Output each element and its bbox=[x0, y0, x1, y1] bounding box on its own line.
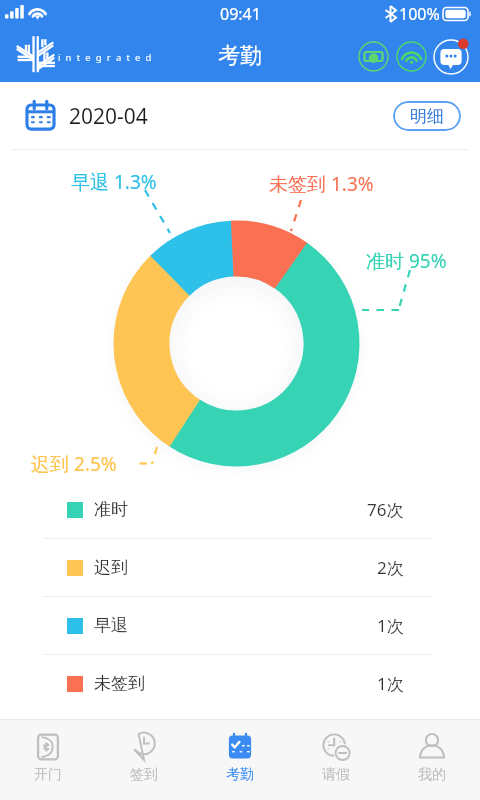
staticText: 准时 95% bbox=[366, 248, 447, 274]
staticText: 准时 bbox=[94, 499, 128, 520]
button[interactable]: 签到 bbox=[96, 720, 192, 800]
button[interactable]: 开门 bbox=[0, 720, 96, 800]
staticText: 早退 1.3% bbox=[71, 169, 157, 195]
staticText: i n t e g r a t e d bbox=[58, 51, 153, 64]
staticText: 未签到 bbox=[94, 673, 145, 694]
button[interactable]: Messages bbox=[430, 34, 474, 78]
button[interactable]: Device status bbox=[354, 37, 392, 75]
button[interactable]: 考勤 bbox=[192, 720, 288, 800]
staticText: 迟到 2.5% bbox=[31, 451, 117, 477]
staticText: 请假 bbox=[322, 766, 350, 784]
staticText: 2次 bbox=[377, 556, 404, 579]
staticText: 09:41 bbox=[220, 3, 261, 25]
staticText: 我的 bbox=[418, 766, 446, 784]
staticText: 100% bbox=[399, 3, 440, 25]
button[interactable]: 早退 bbox=[0, 597, 480, 654]
button[interactable]: 未签到 bbox=[0, 655, 480, 712]
staticText: 开门 bbox=[34, 766, 62, 784]
staticText: 76次 bbox=[367, 498, 404, 521]
button[interactable]: 迟到 bbox=[0, 539, 480, 596]
staticText: 1次 bbox=[377, 614, 404, 637]
staticText: 明细 bbox=[410, 106, 444, 127]
button[interactable]: 请假 bbox=[288, 720, 384, 800]
staticText: 早退 bbox=[94, 615, 128, 636]
staticText: 签到 bbox=[130, 766, 158, 784]
button[interactable]: 我的 bbox=[384, 720, 480, 800]
staticText: 考勤 bbox=[218, 42, 262, 70]
button[interactable]: Network bbox=[392, 37, 430, 75]
button[interactable]: 准时 bbox=[0, 481, 480, 538]
staticText: 未签到 1.3% bbox=[269, 171, 374, 197]
staticText: 迟到 bbox=[94, 557, 128, 578]
staticText: 2020-04 bbox=[69, 102, 148, 131]
button[interactable]: 明细 bbox=[393, 101, 461, 131]
staticText: 1次 bbox=[377, 672, 404, 695]
staticText: 考勤 bbox=[226, 766, 254, 784]
